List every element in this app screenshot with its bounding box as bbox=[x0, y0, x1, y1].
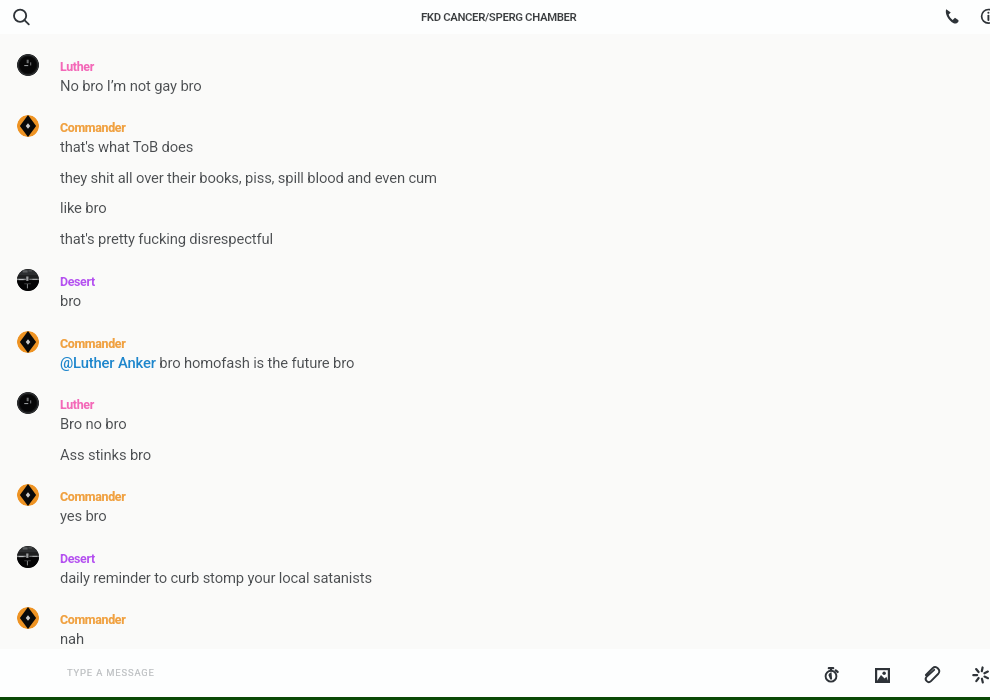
button[interactable]: Gallery bbox=[860, 653, 904, 697]
staticText: @Luther Anker bro homofash is the future… bbox=[60, 354, 355, 371]
staticText: TYPE A MESSAGE bbox=[67, 667, 155, 678]
button[interactable]: Info bbox=[971, 0, 990, 34]
staticText: that's what ToB does bbox=[60, 138, 194, 155]
staticText: Commander bbox=[60, 120, 126, 135]
button[interactable]: Commander bbox=[0, 487, 990, 509]
staticText: Commander bbox=[60, 489, 126, 504]
staticText: Ass stinks bro bbox=[60, 446, 152, 463]
button[interactable]: Attach file bbox=[909, 653, 953, 697]
staticText: Commander bbox=[60, 336, 126, 351]
staticText: daily reminder to curb stomp your local … bbox=[60, 569, 372, 586]
button[interactable]: Commander bbox=[0, 334, 990, 356]
button[interactable]: Timer bbox=[809, 653, 853, 697]
staticText: Desert bbox=[60, 274, 95, 289]
staticText: nah bbox=[60, 630, 84, 647]
staticText: like bro bbox=[60, 199, 107, 216]
staticText: FKD CANCER/SPERG CHAMBER bbox=[421, 10, 577, 23]
button[interactable]: Desert bbox=[0, 272, 990, 294]
button[interactable]: Commander bbox=[0, 118, 990, 140]
button[interactable]: Effects bbox=[959, 653, 990, 697]
button[interactable]: Desert bbox=[0, 549, 990, 571]
staticText: No bro I’m not gay bro bbox=[60, 77, 202, 94]
button[interactable]: Luther bbox=[0, 57, 990, 79]
staticText: yes bro bbox=[60, 507, 107, 524]
button[interactable]: Search bbox=[4, 1, 36, 33]
staticText: Bro no bro bbox=[60, 415, 127, 432]
button[interactable]: Luther bbox=[0, 395, 990, 417]
staticText: Commander bbox=[60, 612, 126, 627]
button[interactable]: TYPE A MESSAGE bbox=[0, 649, 800, 697]
staticText: they shit all over their books, piss, sp… bbox=[60, 169, 437, 186]
staticText: Desert bbox=[60, 551, 95, 566]
staticText: that's pretty fucking disrespectful bbox=[60, 230, 273, 247]
staticText: bro bbox=[60, 292, 82, 309]
staticText: Luther bbox=[60, 59, 94, 74]
button[interactable]: Call bbox=[936, 0, 970, 34]
staticText: Luther bbox=[60, 397, 94, 412]
button[interactable]: Commander bbox=[0, 610, 990, 632]
